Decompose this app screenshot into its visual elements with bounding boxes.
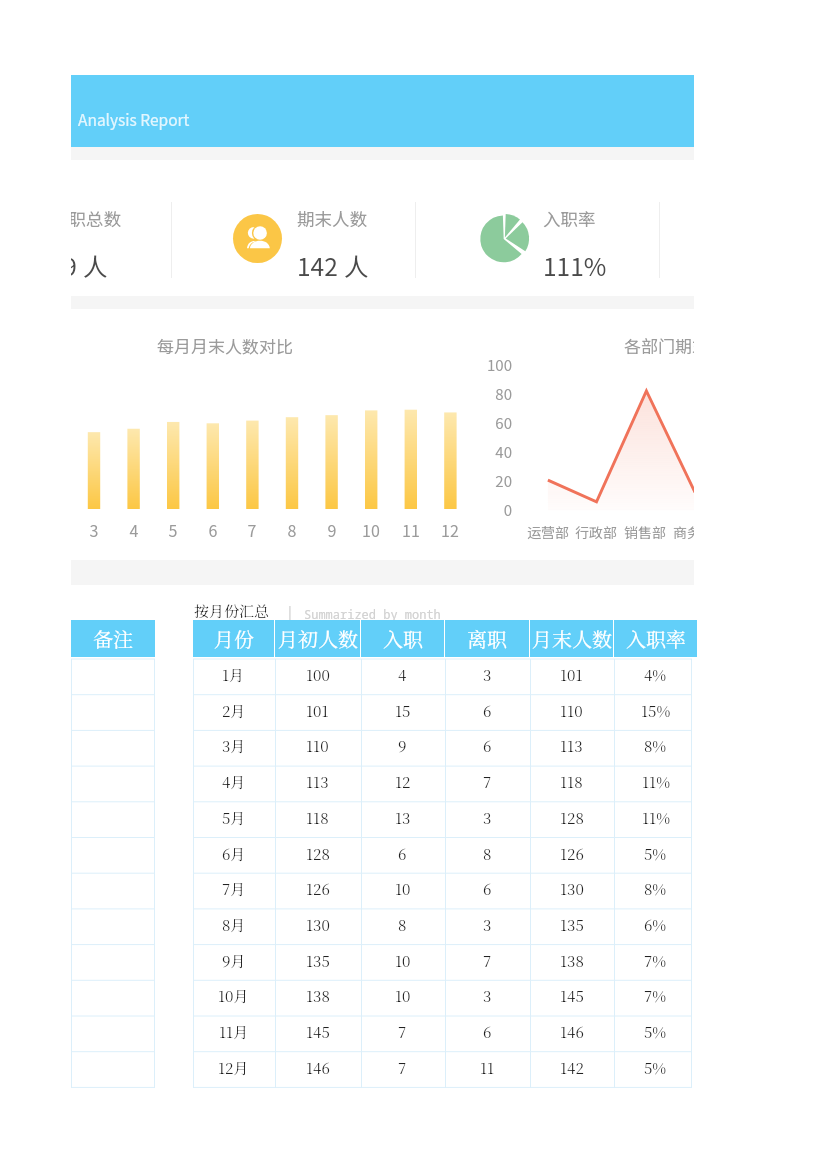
staticText: 月份 bbox=[214, 624, 254, 653]
staticText: 销售部 bbox=[619, 522, 671, 542]
staticText: 4% bbox=[644, 664, 667, 686]
button[interactable]: 4月 bbox=[193, 764, 697, 800]
staticText: 11 bbox=[480, 1057, 495, 1079]
staticText: 10 bbox=[356, 518, 386, 541]
staticText: 入职总数 bbox=[71, 206, 121, 231]
staticText: 离职 bbox=[467, 624, 507, 653]
staticText: 3 bbox=[483, 807, 492, 829]
staticText: 142 bbox=[297, 248, 338, 283]
staticText: 101 bbox=[560, 664, 583, 686]
staticText: 4 bbox=[398, 664, 407, 686]
staticText: 13 bbox=[395, 807, 411, 829]
staticText: 11月 bbox=[219, 1021, 249, 1043]
staticText: 7% bbox=[644, 950, 667, 972]
staticText: 100 bbox=[306, 664, 330, 686]
button[interactable]: 3月 bbox=[193, 728, 697, 764]
staticText: 101 bbox=[306, 700, 329, 722]
button[interactable]: Total hires bbox=[71, 190, 169, 290]
staticText: 6 bbox=[198, 518, 228, 541]
staticText: 20 bbox=[466, 470, 512, 492]
staticText: 6 bbox=[483, 1021, 492, 1043]
staticText: 15% bbox=[641, 700, 671, 722]
staticText: 11% bbox=[642, 771, 670, 793]
staticText: 7 bbox=[483, 950, 492, 972]
staticText: 7% bbox=[644, 985, 667, 1007]
staticText: 1月 bbox=[222, 664, 245, 686]
staticText: 6 bbox=[483, 878, 492, 900]
staticText: 5 bbox=[158, 518, 188, 541]
staticText: 126 bbox=[560, 843, 584, 865]
staticText: 3 bbox=[79, 518, 109, 541]
staticText: 135 bbox=[560, 914, 584, 936]
button[interactable]: 12月 bbox=[193, 1050, 697, 1086]
staticText: 10 bbox=[395, 950, 411, 972]
staticText: 入职 bbox=[383, 624, 423, 653]
staticText: 130 bbox=[560, 878, 584, 900]
staticText: 128 bbox=[306, 843, 330, 865]
staticText: 11% bbox=[642, 807, 670, 829]
staticText: 110 bbox=[560, 700, 583, 722]
staticText: 商务部 bbox=[668, 522, 694, 542]
staticText: 12 bbox=[395, 771, 411, 793]
button[interactable]: 入职率 bbox=[614, 620, 697, 657]
staticText: 118 bbox=[560, 771, 583, 793]
other: Hire rate bbox=[480, 214, 529, 263]
staticText: 10 bbox=[395, 878, 411, 900]
button[interactable]: 入职 bbox=[361, 620, 444, 657]
button[interactable]: 2月 bbox=[193, 693, 697, 729]
button[interactable]: 离职 bbox=[445, 620, 529, 657]
staticText: 3 bbox=[483, 664, 492, 686]
staticText: 8 bbox=[483, 843, 492, 865]
button[interactable]: 10月 bbox=[193, 978, 697, 1014]
staticText: 8% bbox=[644, 735, 667, 757]
button[interactable]: 8月 bbox=[193, 907, 697, 943]
staticText: 11 bbox=[396, 518, 426, 541]
staticText: 人 bbox=[83, 248, 108, 283]
staticText: 142 bbox=[560, 1057, 584, 1079]
button[interactable]: 月初人数 bbox=[275, 620, 360, 657]
staticText: Analysis Report bbox=[78, 108, 190, 130]
staticText: 6月 bbox=[222, 843, 246, 865]
button[interactable]: 5月 bbox=[193, 800, 697, 836]
staticText: 110 bbox=[306, 735, 329, 757]
staticText: 6 bbox=[483, 700, 492, 722]
button[interactable]: 1月 bbox=[193, 657, 697, 693]
staticText: 4 bbox=[119, 518, 149, 541]
staticText: 12月 bbox=[218, 1057, 249, 1079]
button[interactable]: 月末人数 bbox=[530, 620, 613, 657]
staticText: 6% bbox=[644, 914, 667, 936]
staticText: 80 bbox=[466, 383, 512, 405]
staticText: 月初人数 bbox=[278, 624, 358, 653]
staticText: 按月份汇总 bbox=[194, 600, 270, 622]
button[interactable]: 7月 bbox=[193, 871, 697, 907]
staticText: 备注 bbox=[93, 624, 133, 653]
staticText: 入职率 bbox=[543, 206, 596, 231]
button[interactable]: Analysis Report bbox=[71, 75, 694, 147]
staticText: 7 bbox=[237, 518, 267, 541]
staticText: 7月 bbox=[222, 878, 246, 900]
button[interactable]: 月份 bbox=[193, 620, 274, 657]
staticText: 3 bbox=[483, 914, 492, 936]
staticText: 各部门期末人数 bbox=[624, 333, 694, 358]
staticText: 109 bbox=[71, 248, 77, 283]
staticText: 5月 bbox=[222, 807, 246, 829]
button[interactable]: 6月 bbox=[193, 836, 697, 872]
button[interactable]: 备注 bbox=[71, 620, 155, 657]
button[interactable]: 11月 bbox=[193, 1014, 697, 1050]
staticText: 111% bbox=[543, 248, 607, 283]
staticText: 期末人数 bbox=[297, 206, 367, 231]
button[interactable]: 9月 bbox=[193, 943, 697, 979]
staticText: 运营部 bbox=[522, 522, 574, 542]
staticText: 10月 bbox=[218, 985, 249, 1007]
staticText: 3月 bbox=[222, 735, 246, 757]
staticText: 6 bbox=[483, 735, 492, 757]
staticText: 4月 bbox=[222, 771, 246, 793]
staticText: 100 bbox=[466, 354, 512, 376]
staticText: 138 bbox=[306, 985, 330, 1007]
button[interactable]: Headcount bbox=[171, 190, 415, 290]
staticText: 40 bbox=[466, 441, 512, 463]
staticText: 6 bbox=[398, 843, 407, 865]
staticText: 7 bbox=[398, 1021, 407, 1043]
staticText: 130 bbox=[306, 914, 330, 936]
button[interactable]: Hire rate bbox=[417, 190, 661, 290]
